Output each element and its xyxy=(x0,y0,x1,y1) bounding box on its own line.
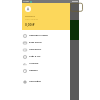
staticText: Платежи и перев xyxy=(29,34,48,37)
staticText: yoomoney.ru xyxy=(25,15,36,17)
button[interactable]: Пополнить xyxy=(22,46,70,53)
button[interactable]: Сайт и усл xyxy=(22,53,70,60)
button[interactable]: Промок xyxy=(22,67,70,74)
staticText: История xyxy=(29,62,39,65)
button[interactable]: Платежи и перев xyxy=(22,32,70,39)
staticText: 12:30 xyxy=(23,0,29,3)
button[interactable]: История xyxy=(22,60,70,67)
button[interactable]: Банк карты xyxy=(22,39,70,46)
staticText: Банк карты xyxy=(29,41,42,44)
staticText: Настройки xyxy=(29,80,42,83)
staticText: 410011 234 56789 xyxy=(25,18,38,20)
staticText: Сайт и усл xyxy=(29,55,41,58)
staticText: 0,00 ₽ xyxy=(25,22,35,26)
button[interactable]: Настройки xyxy=(22,78,70,85)
staticText: Пополнить xyxy=(29,48,42,51)
staticText: Промок xyxy=(29,69,38,72)
